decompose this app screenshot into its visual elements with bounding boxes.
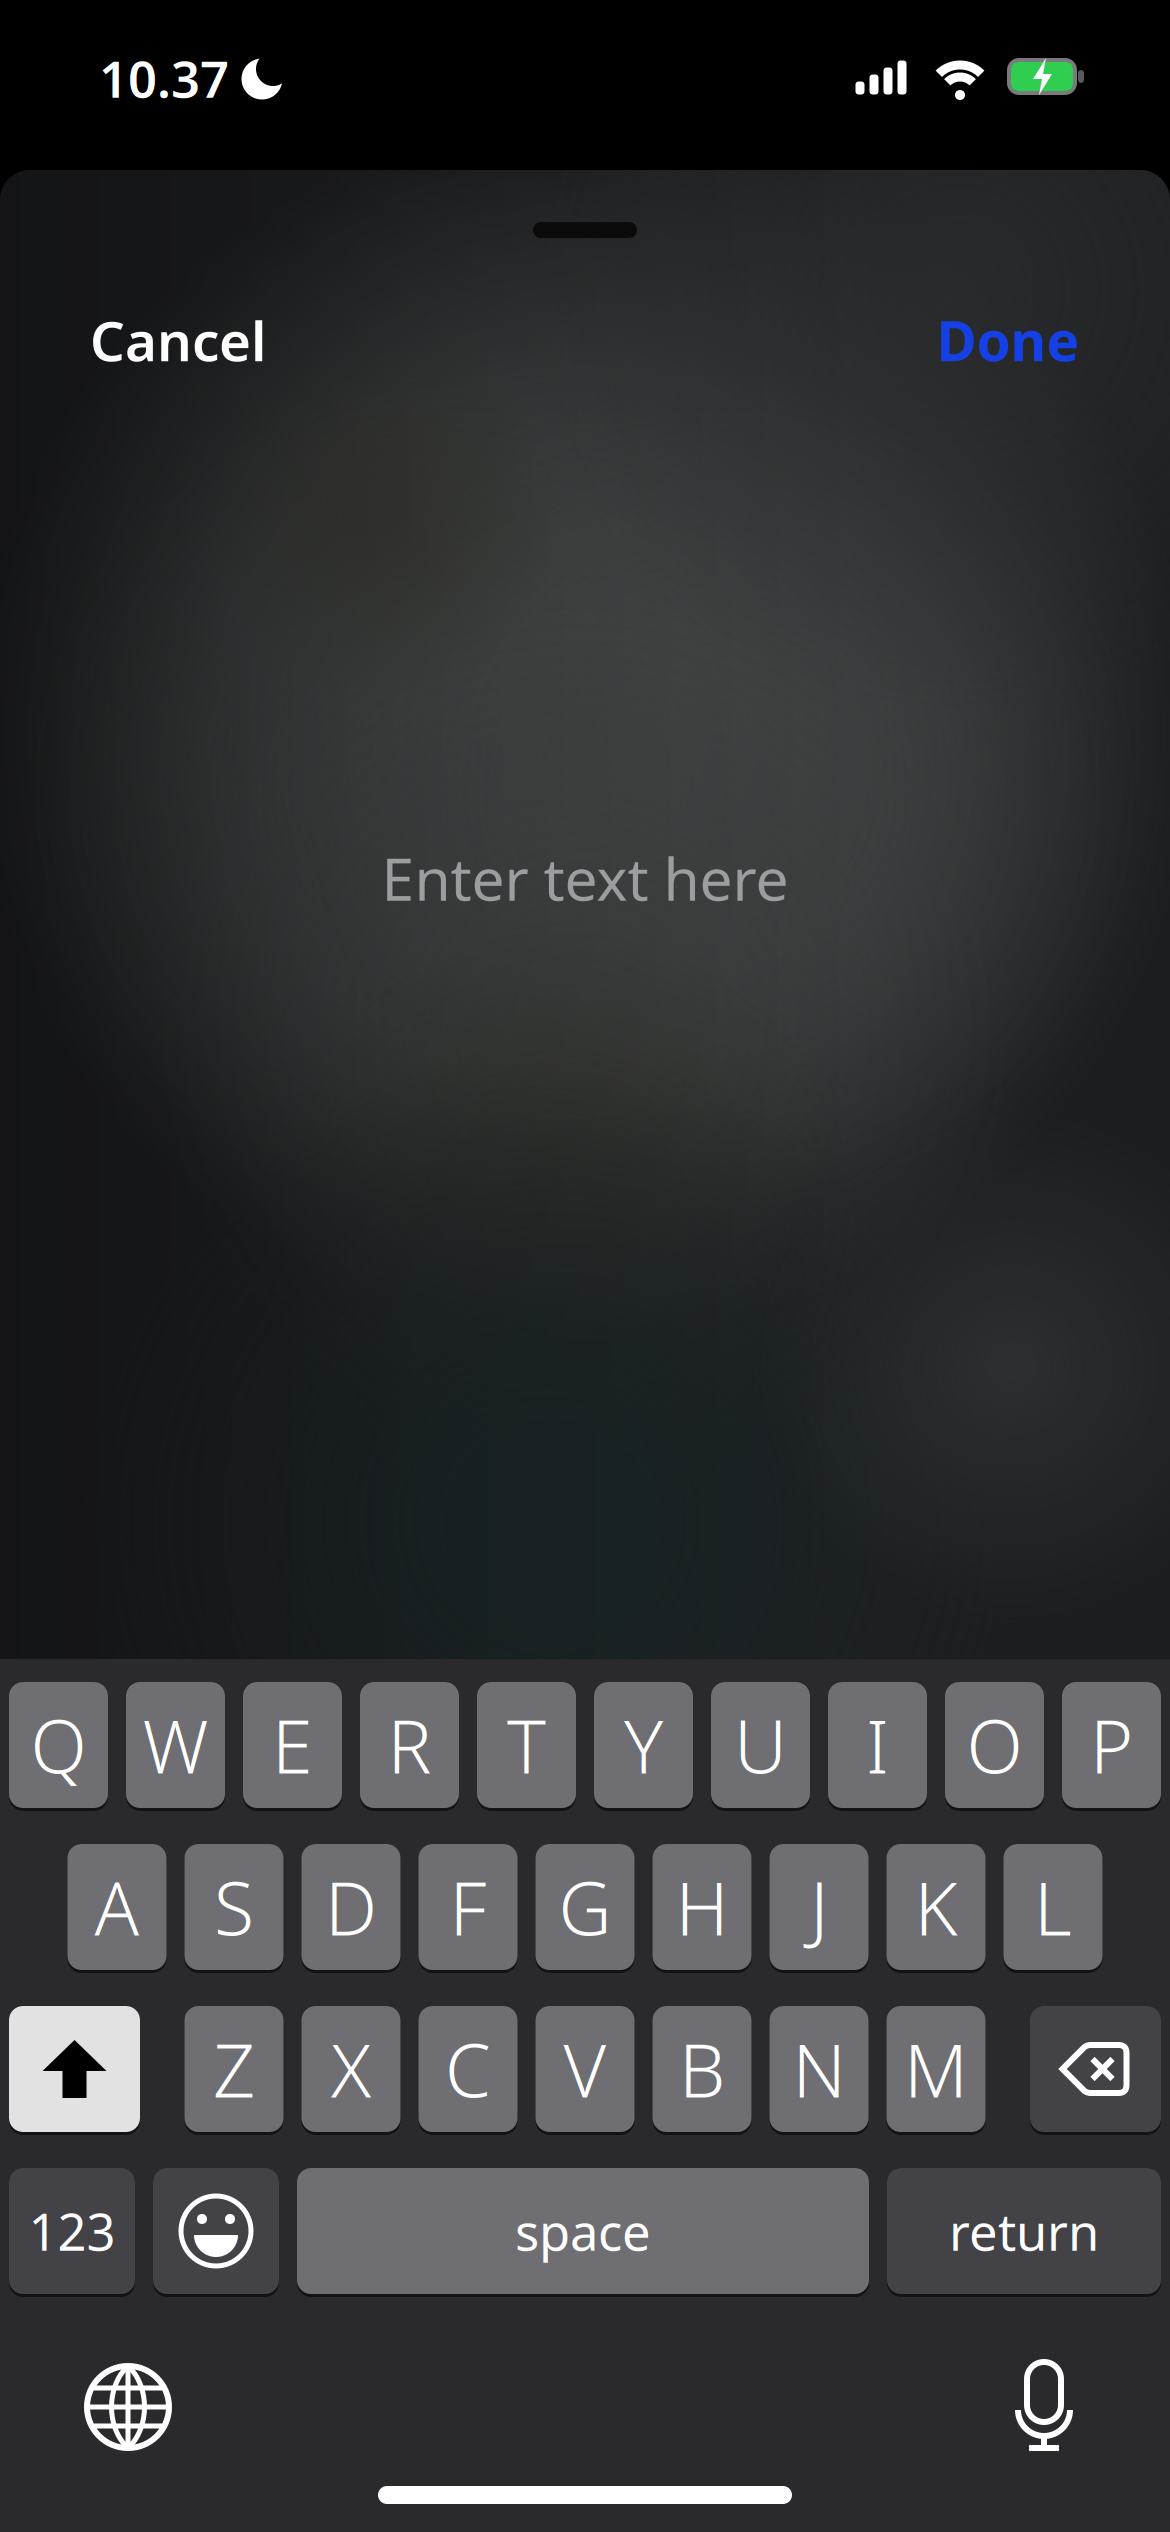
- button[interactable]: X: [301, 2006, 400, 2135]
- staticText: X: [331, 2020, 371, 2118]
- button[interactable]: W: [126, 1682, 225, 1811]
- button[interactable]: H: [652, 1844, 751, 1973]
- button[interactable]: U: [711, 1682, 810, 1811]
- staticText: R: [387, 1696, 431, 1794]
- button[interactable]: Dictation: [1006, 2362, 1082, 2452]
- button[interactable]: 123: [9, 2168, 135, 2297]
- staticText: V: [563, 2020, 606, 2118]
- staticText: B: [679, 2020, 725, 2118]
- button[interactable]: R: [360, 1682, 459, 1811]
- button[interactable]: Z: [184, 2006, 283, 2135]
- staticText: return: [949, 2197, 1099, 2265]
- button[interactable]: K: [886, 1844, 985, 1973]
- button[interactable]: P: [1062, 1682, 1161, 1811]
- button[interactable]: G: [535, 1844, 634, 1973]
- button[interactable]: L: [1003, 1844, 1102, 1973]
- button[interactable]: I: [828, 1682, 927, 1811]
- button[interactable]: D: [301, 1844, 400, 1973]
- staticText: F: [449, 1858, 486, 1956]
- button[interactable]: C: [418, 2006, 517, 2135]
- staticText: M: [904, 2020, 968, 2118]
- button[interactable]: E: [243, 1682, 342, 1811]
- button[interactable]: Emoji: [153, 2168, 279, 2297]
- button[interactable]: O: [945, 1682, 1044, 1811]
- staticText: L: [1034, 1858, 1072, 1956]
- button[interactable]: J: [769, 1844, 868, 1973]
- staticText: space: [515, 2197, 651, 2265]
- staticText: Enter text here: [381, 839, 788, 917]
- staticText: I: [866, 1696, 889, 1794]
- button[interactable]: B: [652, 2006, 751, 2135]
- button[interactable]: Q: [9, 1682, 108, 1811]
- staticText: O: [966, 1696, 1022, 1794]
- staticText: N: [792, 2020, 845, 2118]
- button[interactable]: Cancel: [90, 304, 266, 376]
- button[interactable]: A: [67, 1844, 166, 1973]
- staticText: K: [914, 1858, 957, 1956]
- staticText: Y: [624, 1696, 663, 1794]
- staticText: Cancel: [90, 304, 266, 376]
- button[interactable]: Y: [594, 1682, 693, 1811]
- button[interactable]: Next keyboard: [87, 2366, 169, 2448]
- button[interactable]: F: [418, 1844, 517, 1973]
- button[interactable]: return: [887, 2168, 1161, 2297]
- button[interactable]: V: [535, 2006, 634, 2135]
- staticText: H: [675, 1858, 728, 1956]
- staticText: T: [507, 1696, 546, 1794]
- button[interactable]: Shift: [9, 2006, 140, 2135]
- staticText: 123: [28, 2197, 115, 2265]
- staticText: D: [325, 1858, 377, 1956]
- staticText: A: [94, 1858, 139, 1956]
- button[interactable]: T: [477, 1682, 576, 1811]
- button[interactable]: S: [184, 1844, 283, 1973]
- staticText: J: [810, 1858, 828, 1956]
- button[interactable]: N: [769, 2006, 868, 2135]
- staticText: P: [1090, 1696, 1133, 1794]
- staticText: W: [142, 1696, 208, 1794]
- staticText: Z: [213, 2020, 255, 2118]
- staticText: Done: [936, 304, 1079, 376]
- staticText: S: [214, 1858, 254, 1956]
- button[interactable]: M: [886, 2006, 985, 2135]
- staticText: U: [734, 1696, 787, 1794]
- button[interactable]: Done: [936, 304, 1079, 376]
- button[interactable]: Delete: [1030, 2006, 1161, 2135]
- button[interactable]: space: [297, 2168, 869, 2297]
- staticText: 10.37: [99, 44, 229, 112]
- staticText: Q: [30, 1696, 86, 1794]
- staticText: C: [445, 2020, 491, 2118]
- staticText: G: [558, 1858, 611, 1956]
- staticText: E: [272, 1696, 313, 1794]
